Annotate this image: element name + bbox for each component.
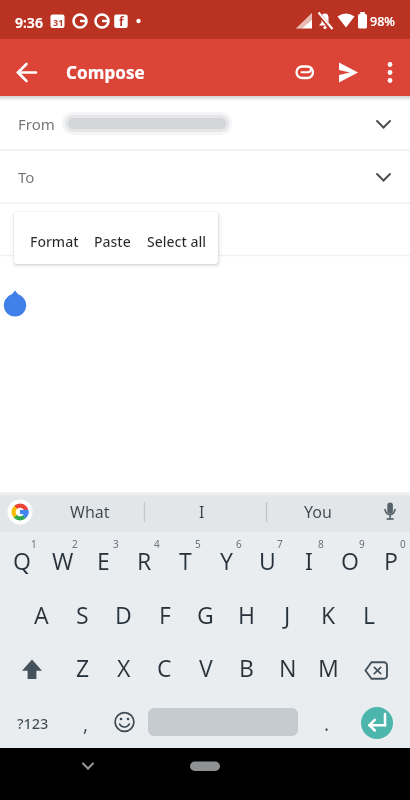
button[interactable]: B xyxy=(226,641,267,694)
staticText: 1 xyxy=(31,537,37,551)
button[interactable] xyxy=(327,51,370,94)
button[interactable] xyxy=(181,748,229,800)
staticText: K xyxy=(321,599,336,630)
staticText: I xyxy=(199,501,205,523)
button[interactable]: P xyxy=(370,533,410,587)
staticText: 9:36 xyxy=(15,13,43,32)
staticText: Paste xyxy=(94,232,131,251)
staticText: F xyxy=(159,599,171,630)
staticText: , xyxy=(83,711,89,737)
button[interactable]: S xyxy=(62,587,103,641)
staticText: From xyxy=(18,114,55,134)
staticText: M xyxy=(318,652,339,683)
button[interactable]: I xyxy=(288,533,329,587)
staticText: V xyxy=(199,652,213,683)
button[interactable]: O xyxy=(329,533,370,587)
button[interactable]: Z xyxy=(62,641,103,694)
button[interactable]: H xyxy=(226,587,267,641)
button[interactable]: Select all xyxy=(141,215,211,264)
staticText: D xyxy=(115,599,132,630)
button[interactable]: F xyxy=(144,587,185,641)
staticText: To xyxy=(18,167,35,187)
staticText: Select all xyxy=(147,232,206,251)
button[interactable] xyxy=(0,641,61,694)
button[interactable]: D xyxy=(103,587,144,641)
button[interactable] xyxy=(371,51,410,94)
staticText: S xyxy=(76,599,89,630)
staticText: Y xyxy=(220,545,234,576)
staticText: U xyxy=(259,545,276,576)
staticText: You xyxy=(304,501,332,523)
button[interactable]: W xyxy=(42,533,83,587)
button[interactable]: I xyxy=(147,492,257,532)
staticText: 5 xyxy=(195,537,201,551)
button[interactable] xyxy=(349,641,410,694)
staticText: Q xyxy=(13,545,31,576)
staticText: G xyxy=(197,599,214,630)
button[interactable] xyxy=(361,707,393,739)
button[interactable] xyxy=(370,492,410,532)
button[interactable] xyxy=(104,694,144,747)
staticText: 98% xyxy=(370,13,395,30)
staticText: f xyxy=(119,13,124,29)
staticText: W xyxy=(52,545,74,576)
staticText: 0 xyxy=(400,537,406,551)
button[interactable]: V xyxy=(185,641,226,694)
button[interactable] xyxy=(283,51,326,94)
button[interactable] xyxy=(0,150,410,203)
staticText: H xyxy=(238,599,256,630)
button[interactable]: L xyxy=(349,587,390,641)
staticText: 4 xyxy=(154,537,160,551)
button[interactable]: C xyxy=(144,641,185,694)
button[interactable]: Y xyxy=(206,533,247,587)
staticText: 9 xyxy=(359,537,365,551)
staticText: ?123 xyxy=(17,713,49,733)
button[interactable]: You xyxy=(270,492,365,532)
button[interactable]: ?123 xyxy=(5,696,61,749)
button[interactable]: U xyxy=(247,533,288,587)
button[interactable]: G xyxy=(185,587,226,641)
staticText: Format xyxy=(30,232,79,251)
button[interactable] xyxy=(64,748,112,800)
button[interactable]: E xyxy=(83,533,124,587)
button[interactable]: N xyxy=(267,641,308,694)
button[interactable]: R xyxy=(124,533,165,587)
button[interactable] xyxy=(0,96,410,150)
button[interactable]: , xyxy=(66,697,106,750)
staticText: C xyxy=(157,652,172,683)
button[interactable]: Format xyxy=(24,215,84,264)
staticText: N xyxy=(279,652,297,683)
staticText: 31 xyxy=(53,16,64,28)
staticText: 6 xyxy=(236,537,242,551)
button[interactable]: Paste xyxy=(86,215,138,264)
staticText: Z xyxy=(76,652,90,683)
staticText: L xyxy=(363,599,376,630)
staticText: B xyxy=(239,652,254,683)
button[interactable]: What xyxy=(40,492,140,532)
staticText: R xyxy=(137,545,152,576)
staticText: What xyxy=(70,501,110,523)
staticText: A xyxy=(34,599,49,630)
staticText: P xyxy=(384,545,398,576)
staticText: E xyxy=(97,545,110,576)
button[interactable]: M xyxy=(308,641,349,694)
staticText: J xyxy=(284,599,291,630)
staticText: T xyxy=(179,545,192,576)
button[interactable]: T xyxy=(165,533,206,587)
staticText: X xyxy=(117,652,131,683)
staticText: 8 xyxy=(318,537,324,551)
button[interactable]: Q xyxy=(1,533,42,587)
staticText: Compose xyxy=(66,61,145,84)
staticText: 7 xyxy=(277,537,283,551)
button[interactable]: K xyxy=(308,587,349,641)
button[interactable]: . xyxy=(307,697,347,750)
staticText: . xyxy=(324,711,330,737)
staticText: O xyxy=(341,545,359,576)
staticText: 3 xyxy=(113,537,119,551)
button[interactable] xyxy=(3,48,51,96)
button[interactable]: X xyxy=(103,641,144,694)
button[interactable]: J xyxy=(267,587,308,641)
button[interactable]: A xyxy=(21,587,62,641)
staticText: 2 xyxy=(72,537,78,551)
